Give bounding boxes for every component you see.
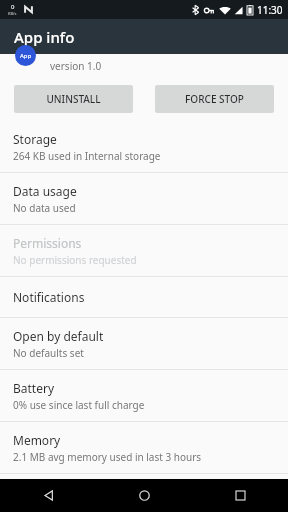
staticText: No permissions requested	[13, 253, 137, 267]
button[interactable]: Permissions	[0, 225, 288, 276]
staticText: 0% use since last full charge	[13, 398, 145, 412]
button[interactable]: Recent apps	[192, 479, 288, 512]
staticText: KB/s	[8, 11, 17, 16]
staticText: version 1.0	[50, 59, 102, 73]
staticText: Storage	[13, 131, 57, 147]
button[interactable]: FORCE STOP	[155, 85, 274, 113]
staticText: 264 KB used in Internal storage	[13, 149, 161, 163]
staticText: 11:30	[257, 3, 283, 17]
button[interactable]: Home	[96, 479, 192, 512]
staticText: Memory	[13, 432, 61, 448]
staticText: 2.1 MB avg memory used in last 3 hours	[13, 450, 202, 464]
staticText: Battery	[13, 380, 55, 396]
staticText: No defaults set	[13, 346, 84, 360]
staticText: Notifications	[13, 289, 85, 305]
button[interactable]: UNINSTALL	[14, 85, 133, 113]
staticText: Permissions	[13, 235, 82, 251]
button[interactable]: Storage	[0, 121, 288, 172]
staticText: 0	[11, 3, 15, 11]
button[interactable]: Data usage	[0, 173, 288, 224]
staticText: No data used	[13, 201, 76, 215]
staticText: App info	[14, 27, 75, 47]
staticText: FORCE STOP	[185, 92, 244, 106]
button[interactable]: Notifications	[0, 277, 288, 317]
staticText: App	[20, 52, 32, 60]
button[interactable]: Open by default	[0, 318, 288, 369]
button[interactable]: App	[0, 54, 288, 76]
button[interactable]: Memory	[0, 422, 288, 473]
staticText: UNINSTALL	[46, 92, 101, 106]
staticText: Open by default	[13, 328, 104, 344]
button[interactable]: Battery	[0, 370, 288, 421]
staticText: Data usage	[13, 183, 77, 199]
button[interactable]: Back	[0, 479, 96, 512]
